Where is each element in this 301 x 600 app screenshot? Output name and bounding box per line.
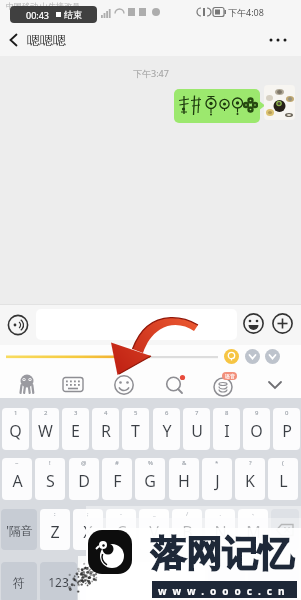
- button[interactable]: [265, 30, 291, 50]
- staticText: 结束: [64, 9, 82, 20]
- staticText: Q: [9, 420, 22, 442]
- staticText: &: [182, 459, 187, 467]
- staticText: D: [78, 470, 90, 492]
- button[interactable]: ~: [2, 458, 32, 500]
- button[interactable]: [243, 313, 264, 334]
- staticText: 符: [13, 575, 25, 590]
- staticText: ;: [87, 510, 89, 518]
- button[interactable]: :: [40, 509, 70, 550]
- button[interactable]: [245, 349, 260, 364]
- button[interactable]: 7: [183, 408, 210, 450]
- staticText: A: [12, 470, 23, 492]
- staticText: 嗯嗯嗯: [27, 32, 66, 48]
- button[interactable]: 123: [40, 562, 77, 600]
- button[interactable]: ?: [235, 458, 265, 500]
- button[interactable]: '隔音: [1, 509, 37, 550]
- staticText: X: [83, 521, 93, 543]
- staticText: ~: [15, 459, 19, 467]
- staticText: %: [148, 459, 153, 467]
- staticText: ､: [252, 510, 255, 516]
- button[interactable]: 5: [122, 408, 149, 450]
- button[interactable]: [264, 85, 295, 120]
- staticText: @: [81, 459, 87, 467]
- staticText: P: [282, 420, 292, 442]
- button[interactable]: 嗯嗯嗯: [6, 24, 66, 56]
- staticText: 语音: [225, 373, 235, 379]
- staticText: O: [250, 420, 263, 442]
- button[interactable]: 9: [243, 408, 270, 450]
- staticText: !: [49, 459, 51, 467]
- staticText: 5: [134, 409, 138, 417]
- button[interactable]: 4: [92, 408, 119, 450]
- staticText: _: [153, 510, 156, 518]
- staticText: 下午3:47: [133, 67, 169, 79]
- button[interactable]: 00:43: [10, 6, 97, 23]
- button[interactable]: *: [202, 458, 232, 500]
- staticText: /: [186, 510, 189, 518]
- button[interactable]: [272, 313, 293, 334]
- staticText: Z: [50, 521, 60, 543]
- staticText: 9: [255, 409, 259, 417]
- button[interactable]: #: [102, 458, 132, 500]
- button[interactable]: 2: [32, 408, 59, 450]
- button[interactable]: 符: [1, 562, 37, 600]
- staticText: M: [246, 521, 261, 543]
- staticText: G: [144, 470, 156, 492]
- staticText: E: [71, 420, 80, 442]
- button[interactable]: [265, 349, 280, 364]
- button[interactable]: _: [139, 509, 169, 550]
- staticText: N: [214, 521, 227, 543]
- button[interactable]: !: [35, 458, 65, 500]
- button[interactable]: &: [169, 458, 199, 500]
- staticText: ．: [217, 510, 223, 518]
- staticText: 中国移动 山生接改员: [6, 0, 81, 11]
- staticText: :: [54, 510, 56, 518]
- staticText: F: [113, 470, 122, 492]
- staticText: 123: [48, 574, 69, 590]
- button[interactable]: 语音: [213, 374, 237, 398]
- button[interactable]: [248, 562, 299, 600]
- staticText: R: [101, 420, 111, 442]
- button[interactable]: [16, 374, 38, 396]
- button[interactable]: ．: [205, 509, 235, 550]
- button[interactable]: [80, 562, 205, 600]
- staticText: V: [149, 521, 159, 543]
- button[interactable]: [271, 509, 299, 550]
- button[interactable]: 1: [2, 408, 29, 450]
- staticText: 下午4:08: [228, 6, 264, 18]
- button[interactable]: -: [106, 509, 136, 550]
- button[interactable]: (: [268, 458, 298, 500]
- staticText: 3: [74, 409, 78, 417]
- button[interactable]: /: [172, 509, 202, 550]
- button[interactable]: 。: [208, 562, 245, 600]
- button[interactable]: ;: [73, 509, 103, 550]
- button[interactable]: @: [69, 458, 99, 500]
- staticText: ?: [249, 459, 252, 467]
- button[interactable]: 0: [273, 408, 300, 450]
- staticText: B: [182, 521, 193, 543]
- button[interactable]: [62, 376, 84, 394]
- button[interactable]: 6: [153, 408, 180, 450]
- staticText: T: [131, 420, 140, 442]
- button[interactable]: [174, 89, 260, 123]
- staticText: W: [38, 420, 53, 442]
- button[interactable]: ､: [238, 509, 268, 550]
- staticText: L: [279, 470, 288, 492]
- staticText: 7: [195, 409, 199, 417]
- button[interactable]: [164, 374, 188, 398]
- button[interactable]: [224, 349, 239, 364]
- staticText: www.oooc.cn: [158, 584, 291, 598]
- button[interactable]: %: [135, 458, 165, 500]
- button[interactable]: 3: [62, 408, 89, 450]
- button[interactable]: 8: [213, 408, 240, 450]
- staticText: I: [224, 420, 230, 442]
- staticText: 00:43: [26, 9, 50, 21]
- staticText: U: [191, 420, 203, 442]
- button[interactable]: [113, 374, 135, 396]
- button[interactable]: [264, 376, 286, 394]
- staticText: -: [120, 510, 122, 518]
- staticText: 8: [225, 409, 229, 417]
- staticText: K: [245, 470, 255, 492]
- button[interactable]: [7, 314, 29, 336]
- button[interactable]: [36, 309, 237, 340]
